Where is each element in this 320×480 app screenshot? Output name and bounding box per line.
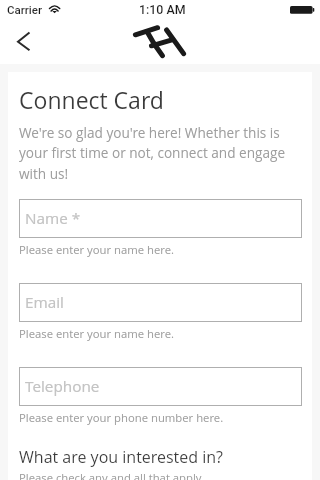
staticText: What are you interested in? [19, 446, 223, 468]
staticText: We're so glad you're here! Whether this … [19, 123, 302, 183]
staticText: Name * [25, 208, 81, 229]
staticText: Please enter your name here. [19, 242, 175, 257]
staticText: 1:10 AM [139, 2, 186, 17]
staticText: Please enter your name here. [19, 326, 175, 341]
staticText: Email [25, 292, 64, 313]
staticText: Carrier [7, 3, 42, 16]
staticText: Please check any and all that apply. [19, 470, 205, 480]
staticText: Please enter your phone number here. [19, 410, 224, 425]
button[interactable]: Email [19, 283, 302, 322]
button[interactable]: Name * [19, 199, 302, 238]
staticText: Connect Card [19, 84, 164, 115]
button[interactable]: Back [6, 20, 42, 64]
button[interactable]: Telephone [19, 367, 302, 406]
staticText: Telephone [25, 376, 100, 397]
